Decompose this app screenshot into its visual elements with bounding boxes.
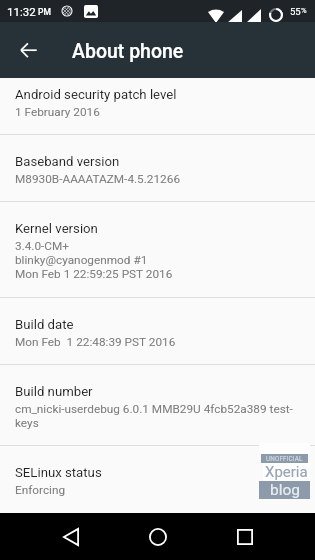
staticText: SELinux status <box>15 464 102 481</box>
staticText: blog <box>270 481 301 499</box>
button[interactable]: Navigate up <box>4 26 52 74</box>
staticText: cm_nicki-userdebug 6.0.1 MMB29U 4fcb52a3… <box>15 402 293 416</box>
button[interactable]: Kernel version <box>0 202 315 297</box>
staticText: blinky@cyanogenmod #1 <box>15 253 148 267</box>
button[interactable]: Android security patch level <box>0 78 315 134</box>
staticText: M8930B-AAAATAZM-4.5.21266 <box>15 172 181 186</box>
button[interactable]: Home <box>132 513 184 560</box>
button[interactable]: SELinux status <box>0 446 315 503</box>
button[interactable]: Baseband version <box>0 135 315 201</box>
button[interactable]: Build date <box>0 298 315 364</box>
staticText: Kernel version <box>15 220 98 237</box>
staticText: UNOFFICIAL <box>266 455 303 463</box>
staticText: Baseband version <box>15 153 120 170</box>
button[interactable]: Recent apps <box>219 513 271 560</box>
staticText: 1 February 2016 <box>15 105 100 119</box>
staticText: 3.4.0-CM+ <box>15 239 70 253</box>
staticText: 11:32 <box>7 5 36 18</box>
staticText: About phone <box>72 40 184 63</box>
staticText: Enforcing <box>15 483 66 497</box>
staticText: Build date <box>15 316 74 333</box>
staticText: Xperia <box>265 463 308 481</box>
staticText: Android security patch level <box>15 86 177 103</box>
staticText: % <box>301 6 307 15</box>
staticText: 55 <box>290 6 301 17</box>
staticText: PM <box>38 7 51 17</box>
button[interactable]: Back <box>45 513 97 560</box>
button[interactable]: Build number <box>0 365 315 445</box>
staticText: Mon Feb 1 22:48:39 PST 2016 <box>15 335 176 349</box>
staticText: Build number <box>15 383 93 400</box>
staticText: Mon Feb 1 22:59:25 PST 2016 <box>15 267 173 281</box>
staticText: keys <box>15 416 39 430</box>
